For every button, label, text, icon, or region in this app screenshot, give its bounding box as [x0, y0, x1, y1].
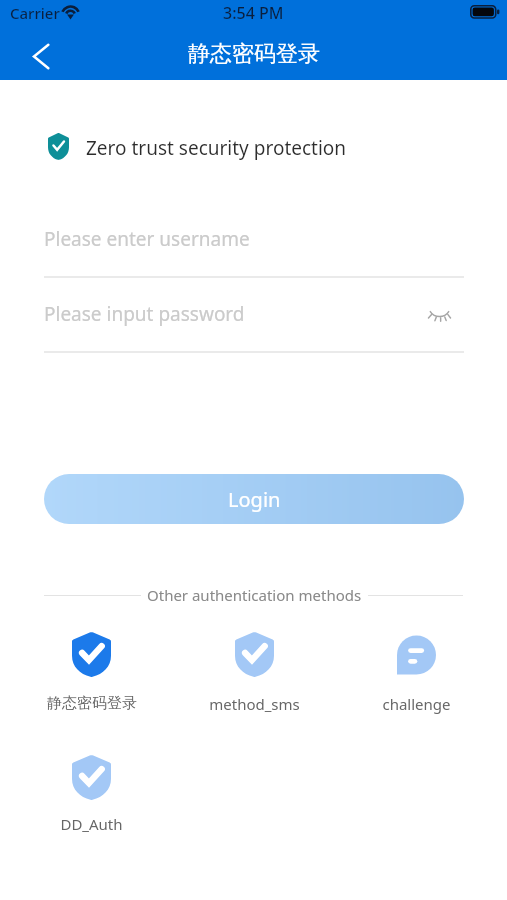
staticText: 静态密码登录 — [47, 694, 137, 713]
button[interactable]: method_sms — [173, 624, 335, 714]
staticText: Please enter username — [44, 226, 250, 252]
staticText: Zero trust security protection — [86, 135, 347, 161]
staticText: Carrier — [10, 3, 60, 23]
staticText: 静态密码登录 — [188, 40, 320, 68]
staticText: method_sms — [209, 694, 300, 714]
staticText: Please input password — [44, 301, 245, 327]
button[interactable]: Login — [44, 474, 464, 524]
button[interactable]: 静态密码登录 — [10, 624, 173, 713]
staticText: 3:54 PM — [223, 2, 284, 24]
staticText: DD_Auth — [60, 814, 123, 834]
button[interactable]: Back — [21, 33, 61, 73]
staticText: challenge — [382, 694, 451, 714]
staticText: Other authentication methods — [147, 585, 362, 605]
button[interactable]: DD_Auth — [10, 747, 173, 834]
button[interactable]: Show password — [418, 298, 460, 332]
button[interactable]: challenge — [335, 624, 497, 714]
staticText: Login — [228, 486, 281, 513]
